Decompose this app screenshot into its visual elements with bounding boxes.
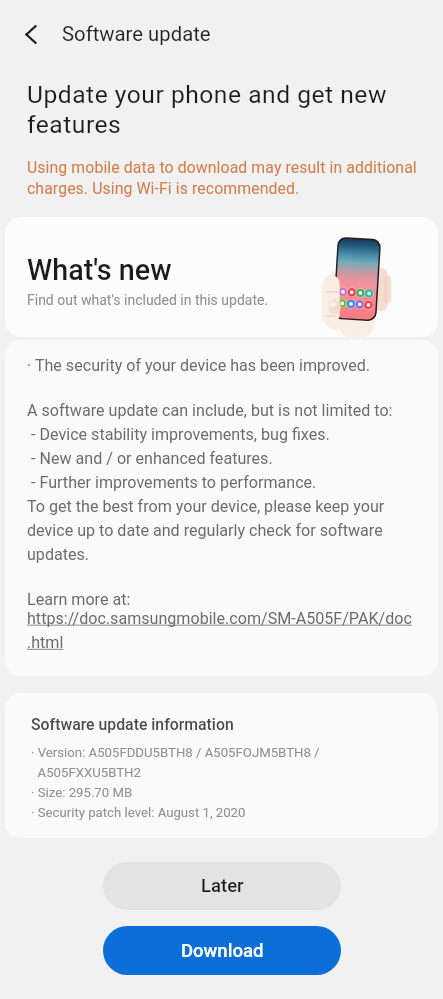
staticText: Download	[181, 940, 264, 962]
staticText: Software update information	[31, 715, 234, 734]
staticText: Update your phone and get new features	[27, 80, 418, 139]
button[interactable]: Later	[103, 862, 341, 910]
staticText: Software update	[62, 22, 211, 46]
button[interactable]: What's new	[5, 217, 438, 337]
staticText: Find out what's included in this update.	[27, 292, 269, 308]
staticText: A software update can include, but is no…	[27, 401, 422, 564]
staticText: https://doc.samsungmobile.com/SM-A505F/P…	[27, 609, 412, 652]
staticText: Later	[201, 875, 244, 897]
staticText: What's new	[27, 253, 172, 287]
button[interactable]: Download	[103, 926, 341, 975]
staticText: · Version: A505FDDU5BTH8 / A505FOJM5BTH8…	[31, 745, 320, 820]
staticText: Using mobile data to download may result…	[27, 158, 418, 198]
staticText: Learn more at:	[27, 590, 131, 609]
staticText: · The security of your device has been i…	[27, 356, 371, 375]
button[interactable]: Navigate up	[0, 0, 62, 67]
